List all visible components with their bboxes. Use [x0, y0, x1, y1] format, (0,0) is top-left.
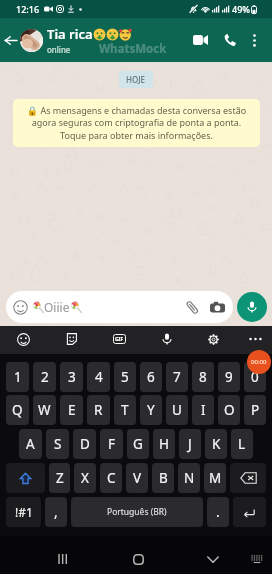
staticText: F [108, 435, 116, 453]
button[interactable]: 8 [192, 362, 214, 392]
button[interactable]: Voice call [217, 18, 243, 62]
staticText: HOJE [126, 74, 146, 85]
staticText: S [54, 435, 62, 453]
button[interactable]: 4 [87, 362, 110, 392]
button[interactable]: B [152, 463, 174, 493]
button[interactable]: Camera [206, 296, 228, 318]
button[interactable]: R [87, 395, 110, 425]
button[interactable]: 7 [166, 362, 188, 392]
staticText: K [212, 435, 221, 453]
button[interactable]: 0 [244, 362, 266, 392]
staticText: , [54, 503, 58, 521]
button[interactable]: F [100, 429, 123, 459]
button[interactable]: 🔒 As mensagens e chamadas desta conversa… [13, 99, 260, 147]
staticText: !#1 [15, 504, 33, 520]
button[interactable]: L [231, 429, 253, 459]
staticText: 8 [199, 368, 207, 386]
button[interactable]: Y [140, 395, 162, 425]
button[interactable]: , [45, 497, 67, 527]
button[interactable]: A [19, 429, 42, 459]
button[interactable]: W [33, 395, 56, 425]
button[interactable]: More [242, 326, 268, 352]
button[interactable]: Recording timer [247, 350, 271, 374]
button[interactable]: Attach [181, 296, 203, 318]
button[interactable]: Back [0, 18, 20, 62]
button[interactable]: T [114, 395, 136, 425]
staticText: 6 [147, 368, 155, 386]
button[interactable]: Video call [187, 18, 213, 62]
staticText: A [26, 435, 35, 453]
button[interactable]: Settings [200, 326, 226, 352]
button[interactable]: Home [124, 545, 152, 573]
staticText: online [47, 44, 71, 55]
staticText: J [188, 435, 192, 453]
staticText: 2 [41, 368, 49, 386]
staticText: 4 [95, 368, 103, 386]
staticText: O [224, 401, 235, 419]
button[interactable]: Emoji [10, 326, 36, 352]
button[interactable]: Voice message [237, 292, 267, 322]
button[interactable]: GIF [106, 326, 132, 352]
button[interactable]: 1 [6, 362, 29, 392]
button[interactable]: C [100, 463, 122, 493]
button[interactable]: HOJE [119, 71, 153, 88]
staticText: H [159, 435, 170, 453]
button[interactable]: 5 [114, 362, 136, 392]
button[interactable]: 2 [33, 362, 56, 392]
button[interactable] [6, 463, 45, 493]
button[interactable]: P [244, 395, 266, 425]
button[interactable]: Q [6, 395, 29, 425]
button[interactable]: Recents [48, 545, 76, 573]
button[interactable]: V [126, 463, 148, 493]
button[interactable]: Hide keyboard [199, 545, 227, 573]
staticText: D [80, 435, 90, 453]
button[interactable] [233, 497, 266, 527]
staticText: Oiiie [44, 299, 70, 315]
staticText: Z [56, 469, 64, 487]
button[interactable]: 3 [60, 362, 83, 392]
button[interactable]: H [153, 429, 175, 459]
staticText: 12:16 [16, 3, 40, 15]
staticText: V [133, 469, 142, 487]
button[interactable]: K [205, 429, 227, 459]
button[interactable]: Z [49, 463, 70, 493]
staticText: Português (BR) [107, 506, 167, 518]
staticText: L [238, 435, 246, 453]
button[interactable]: D [73, 429, 96, 459]
button[interactable]: !#1 [6, 497, 41, 527]
button[interactable]: Profile photo [20, 29, 43, 52]
button[interactable]: 9 [218, 362, 240, 392]
button[interactable] [230, 463, 266, 493]
button[interactable]: U [166, 395, 188, 425]
staticText: U [172, 401, 182, 419]
staticText: M [209, 469, 222, 487]
staticText: 7 [173, 368, 181, 386]
staticText: Q [12, 401, 23, 419]
button[interactable]: J [179, 429, 201, 459]
button[interactable]: I [192, 395, 214, 425]
button[interactable]: Switch keyboard [243, 545, 271, 573]
button[interactable]: X [74, 463, 96, 493]
button[interactable]: N [178, 463, 200, 493]
button[interactable]: More options [243, 18, 265, 62]
button[interactable]: G [127, 429, 149, 459]
staticText: WhatsMock [99, 41, 167, 57]
staticText: GIF [115, 336, 124, 343]
button[interactable]: 6 [140, 362, 162, 392]
button[interactable]: Oiiie [6, 291, 233, 323]
staticText: W [38, 401, 51, 419]
staticText: P [251, 401, 260, 419]
button[interactable]: Português (BR) [71, 497, 203, 527]
staticText: B [159, 469, 168, 487]
button[interactable]: M [204, 463, 226, 493]
button[interactable]: E [60, 395, 83, 425]
button[interactable]: Voice input [154, 326, 180, 352]
staticText: 5 [121, 368, 129, 386]
staticText: G [133, 435, 143, 453]
staticText: 🔒 As mensagens e chamadas desta conversa… [20, 104, 253, 142]
button[interactable]: O [218, 395, 240, 425]
button[interactable]: S [46, 429, 69, 459]
staticText: N [184, 469, 195, 487]
button[interactable]: Stickers [58, 326, 84, 352]
button[interactable]: . [207, 497, 229, 527]
